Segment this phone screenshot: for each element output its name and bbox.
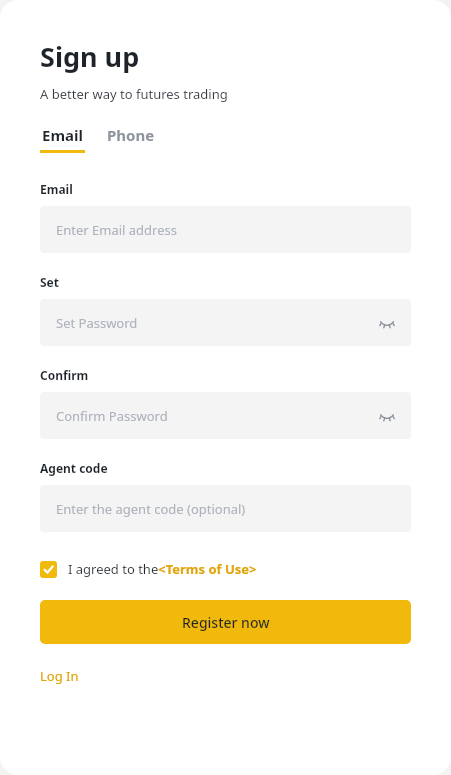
button[interactable]: I agreed to the<Terms of Use> <box>40 560 257 578</box>
staticText: A better way to futures trading <box>40 85 228 103</box>
button[interactable]: Show password <box>379 315 395 331</box>
staticText: Set Password <box>56 314 379 332</box>
staticText: Agent code <box>40 460 108 476</box>
staticText: Email <box>42 125 83 145</box>
staticText: Confirm Password <box>56 407 379 425</box>
staticText: Email <box>40 181 73 197</box>
button[interactable]: Enter Email address <box>40 206 411 253</box>
button[interactable]: Show password <box>379 408 395 424</box>
button[interactable]: Phone <box>107 125 155 145</box>
staticText: I agreed to the<Terms of Use> <box>68 560 257 578</box>
button[interactable]: Enter the agent code (optional) <box>40 485 411 532</box>
other: Show password <box>379 315 395 331</box>
staticText: Log In <box>40 667 79 685</box>
button[interactable]: Email <box>40 125 85 153</box>
button[interactable]: Confirm Password <box>40 392 411 439</box>
staticText: Confirm <box>40 367 89 383</box>
button[interactable]: Log In <box>40 667 79 685</box>
button[interactable]: Set Password <box>40 299 411 346</box>
staticText: Enter Email address <box>56 221 395 239</box>
other: Show password <box>379 408 395 424</box>
staticText: Enter the agent code (optional) <box>56 500 395 518</box>
staticText: Phone <box>107 125 155 145</box>
button[interactable]: Register now <box>40 600 411 644</box>
staticText: Set <box>40 274 59 290</box>
staticText: Sign up <box>40 38 140 75</box>
staticText: Register now <box>182 613 270 632</box>
